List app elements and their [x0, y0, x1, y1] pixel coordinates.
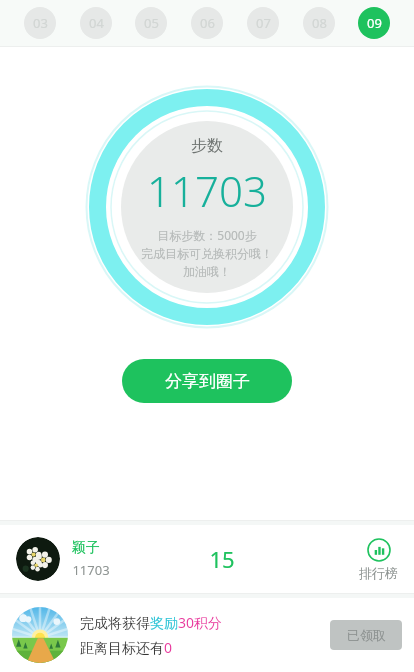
staticText: 步数: [191, 136, 223, 156]
button[interactable]: 07: [247, 7, 279, 39]
staticText: 08: [312, 14, 327, 32]
button[interactable]: 04: [80, 7, 112, 39]
button[interactable]: 已领取: [330, 620, 402, 650]
button[interactable]: 03: [24, 7, 56, 39]
button[interactable]: 颖子: [0, 525, 414, 593]
staticText: 颖子: [72, 539, 100, 557]
staticText: 加油哦！: [183, 264, 231, 279]
button[interactable]: 06: [191, 7, 223, 39]
staticText: 05: [144, 14, 159, 32]
staticText: 目标步数：5000步: [157, 227, 257, 243]
button[interactable]: 排行榜: [359, 538, 398, 581]
button[interactable]: 05: [135, 7, 167, 39]
staticText: 07: [256, 14, 271, 32]
staticText: 11703: [147, 162, 267, 219]
button[interactable]: 完成将获得奖励30积分: [0, 598, 414, 672]
staticText: 15: [209, 544, 235, 574]
button[interactable]: 09: [358, 7, 390, 39]
button[interactable]: 08: [303, 7, 335, 39]
staticText: 09: [367, 14, 382, 32]
staticText: 06: [200, 14, 215, 32]
staticText: 已领取: [347, 627, 386, 643]
staticText: 分享到圈子: [165, 371, 250, 392]
staticText: 完成将获得奖励30积分: [80, 613, 223, 632]
staticText: 11703: [72, 561, 110, 579]
staticText: 完成目标可兑换积分哦！: [141, 246, 273, 261]
staticText: 距离目标还有0: [80, 638, 173, 657]
staticText: 04: [89, 14, 104, 32]
staticText: 03: [33, 14, 48, 32]
button[interactable]: 分享到圈子: [122, 359, 292, 403]
staticText: 排行榜: [359, 565, 398, 581]
